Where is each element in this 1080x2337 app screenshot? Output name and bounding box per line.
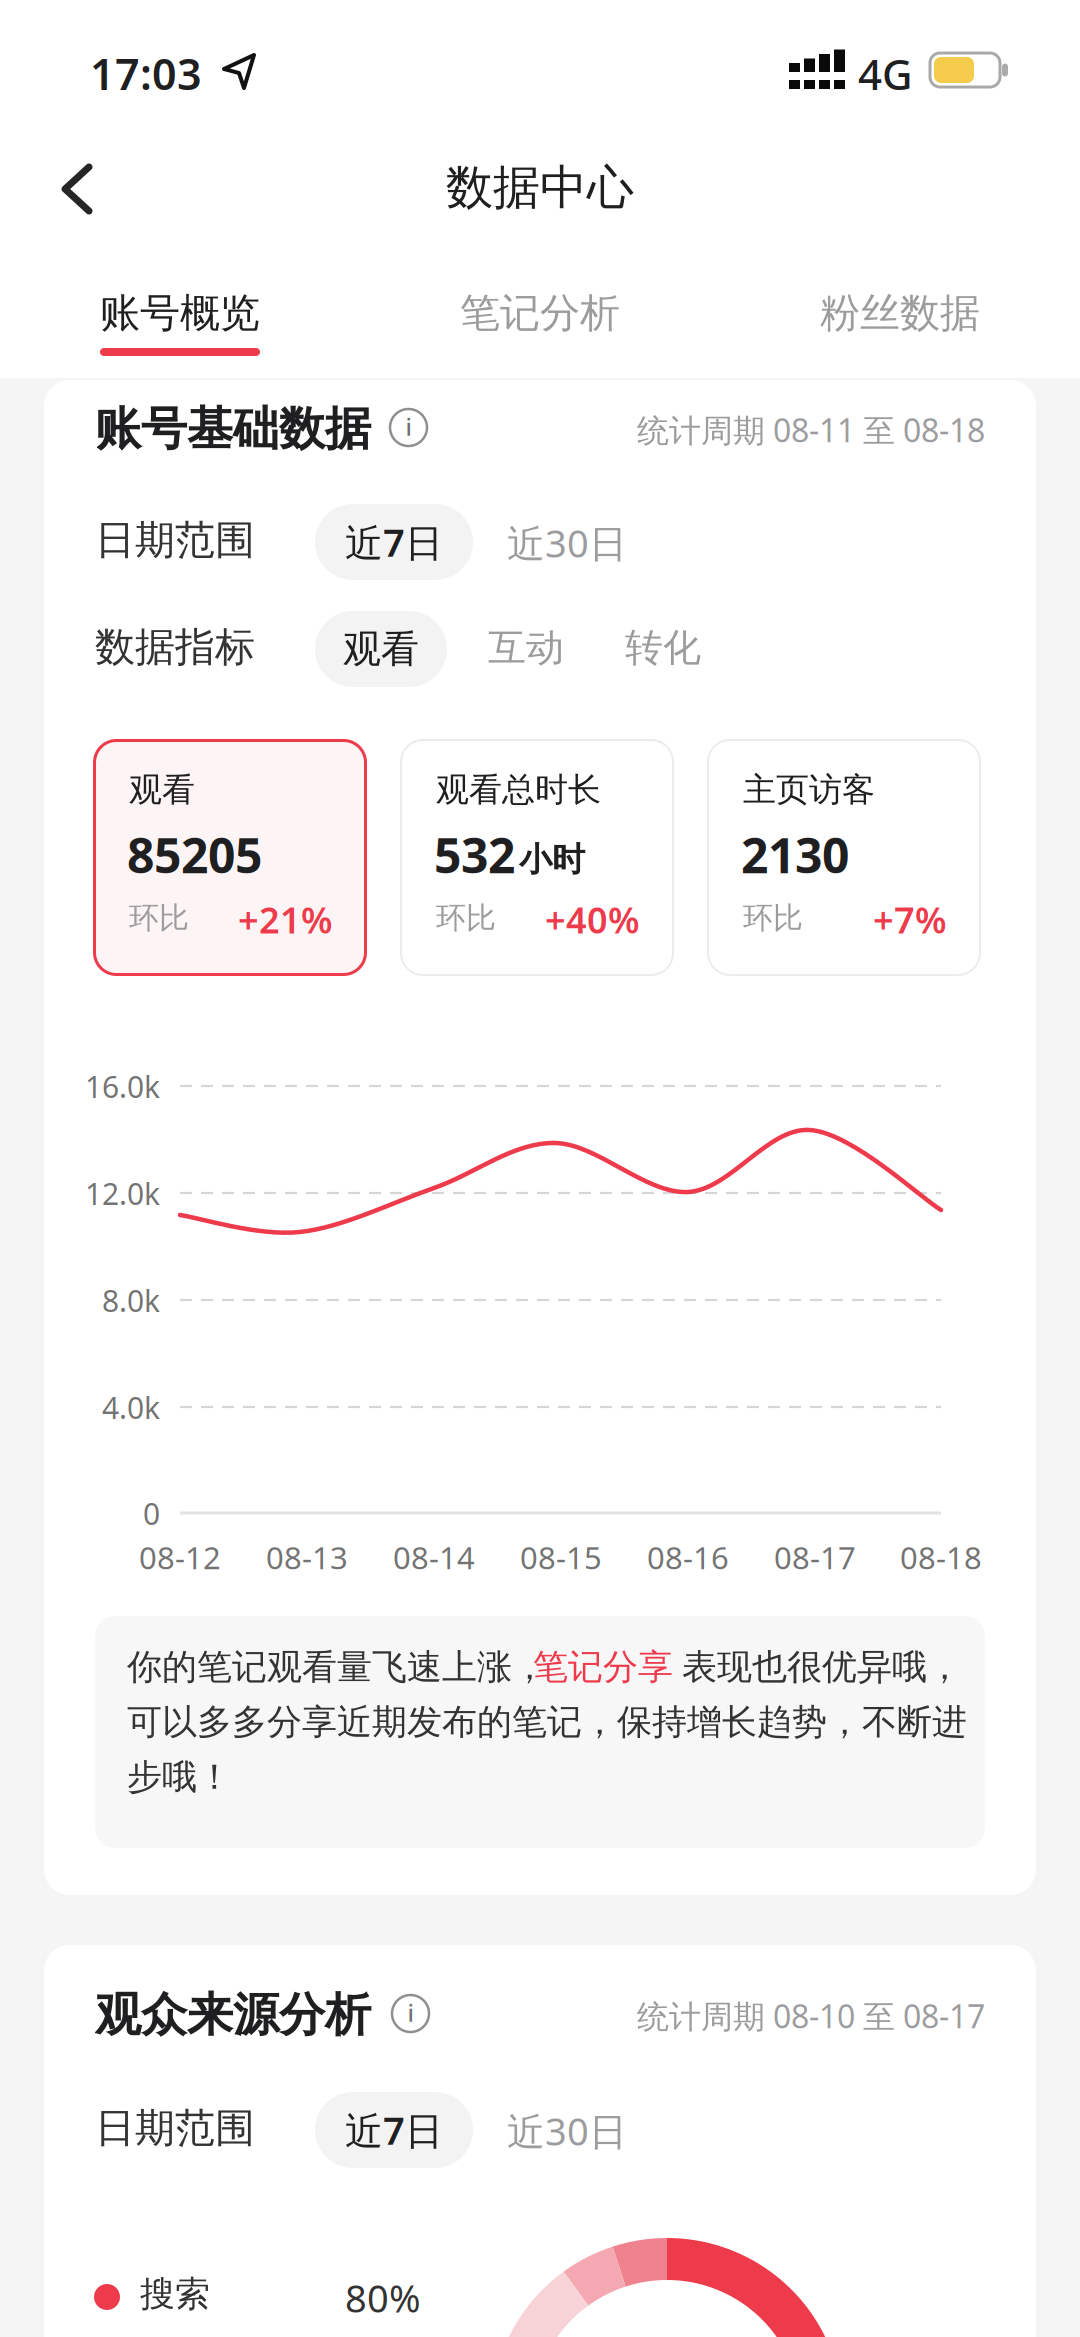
button[interactable]: 笔记分析 [420,288,660,338]
staticText: +40% [545,895,640,944]
staticText: 统计周期 08-10 至 08-17 [637,1994,985,2038]
staticText: 可以多多分享近期发布的笔记，保持增长趋势，不断进 [127,1700,967,1744]
staticText: 近30日 [507,517,627,569]
staticText: 你的笔记观看量飞速上涨， [127,1645,547,1689]
button[interactable]: 主页访客 [707,739,981,976]
button[interactable]: 互动 [488,624,564,672]
staticText: 近30日 [507,2105,627,2157]
button[interactable]: Info [390,409,427,446]
staticText: 08-16 [647,1536,729,1578]
staticText: 观看总时长 [436,769,601,811]
button[interactable]: 近30日 [507,517,627,569]
staticText: 80% [345,2272,421,2324]
button[interactable]: 近7日 [315,504,473,580]
staticText: 85205 [127,822,262,887]
staticText: +7% [873,895,947,944]
button[interactable]: Back [58,163,98,215]
button[interactable]: 粉丝数据 [780,288,1020,338]
staticText: 08-18 [900,1536,982,1578]
button[interactable]: 观看总时长 [400,739,674,976]
staticText: 近7日 [345,2104,443,2156]
staticText: 08-14 [393,1536,475,1578]
staticText: 532 [434,822,515,887]
staticText: 主页访客 [743,769,875,811]
staticText: 近7日 [345,516,443,568]
staticText: 环比 [129,899,189,937]
button[interactable]: 近7日 [315,2092,473,2168]
staticText: 环比 [743,899,803,937]
staticText: 笔记分享 [533,1645,673,1689]
staticText: 17:03 [90,44,202,103]
staticText: 8.0k [102,1280,160,1321]
staticText: 统计周期 08-11 至 08-18 [637,408,985,452]
staticText: 转化 [625,624,701,672]
button[interactable]: 账号概览 [60,288,300,338]
staticText: 步哦！ [127,1755,232,1799]
staticText: 粉丝数据 [820,288,980,338]
staticText: 观看 [129,769,195,811]
staticText: 日期范围 [95,515,255,565]
staticText: i [405,410,411,443]
staticText: +21% [238,895,333,944]
staticText: 12.0k [85,1173,160,1214]
staticText: 环比 [436,899,496,937]
staticText: 账号基础数据 [95,400,371,458]
button[interactable]: 观看 [93,739,367,976]
button[interactable]: 转化 [625,624,701,672]
button[interactable]: 观看 [315,611,447,687]
staticText: 数据指标 [95,622,255,672]
staticText: 搜索 [140,2272,210,2316]
staticText: 表现也很优异哦， [682,1645,962,1689]
staticText: 08-15 [520,1536,602,1578]
staticText: 08-13 [266,1536,348,1578]
staticText: 数据中心 [446,158,634,217]
staticText: 16.0k [85,1066,160,1107]
staticText: 观众来源分析 [95,1986,371,2044]
staticText: 4.0k [102,1387,160,1428]
staticText: 2130 [741,822,849,887]
staticText: 观看 [343,625,419,673]
staticText: 账号概览 [100,288,260,338]
staticText: 08-12 [139,1536,221,1578]
staticText: 4G [858,45,913,102]
staticText: i [407,1996,413,2029]
button[interactable]: Info [392,1995,429,2032]
staticText: 0 [143,1493,160,1534]
staticText: 08-17 [774,1536,856,1578]
staticText: 小时 [519,839,585,880]
staticText: 笔记分析 [460,288,620,338]
staticText: 互动 [488,624,564,672]
staticText: 日期范围 [95,2103,255,2153]
button[interactable]: 近30日 [507,2105,627,2157]
